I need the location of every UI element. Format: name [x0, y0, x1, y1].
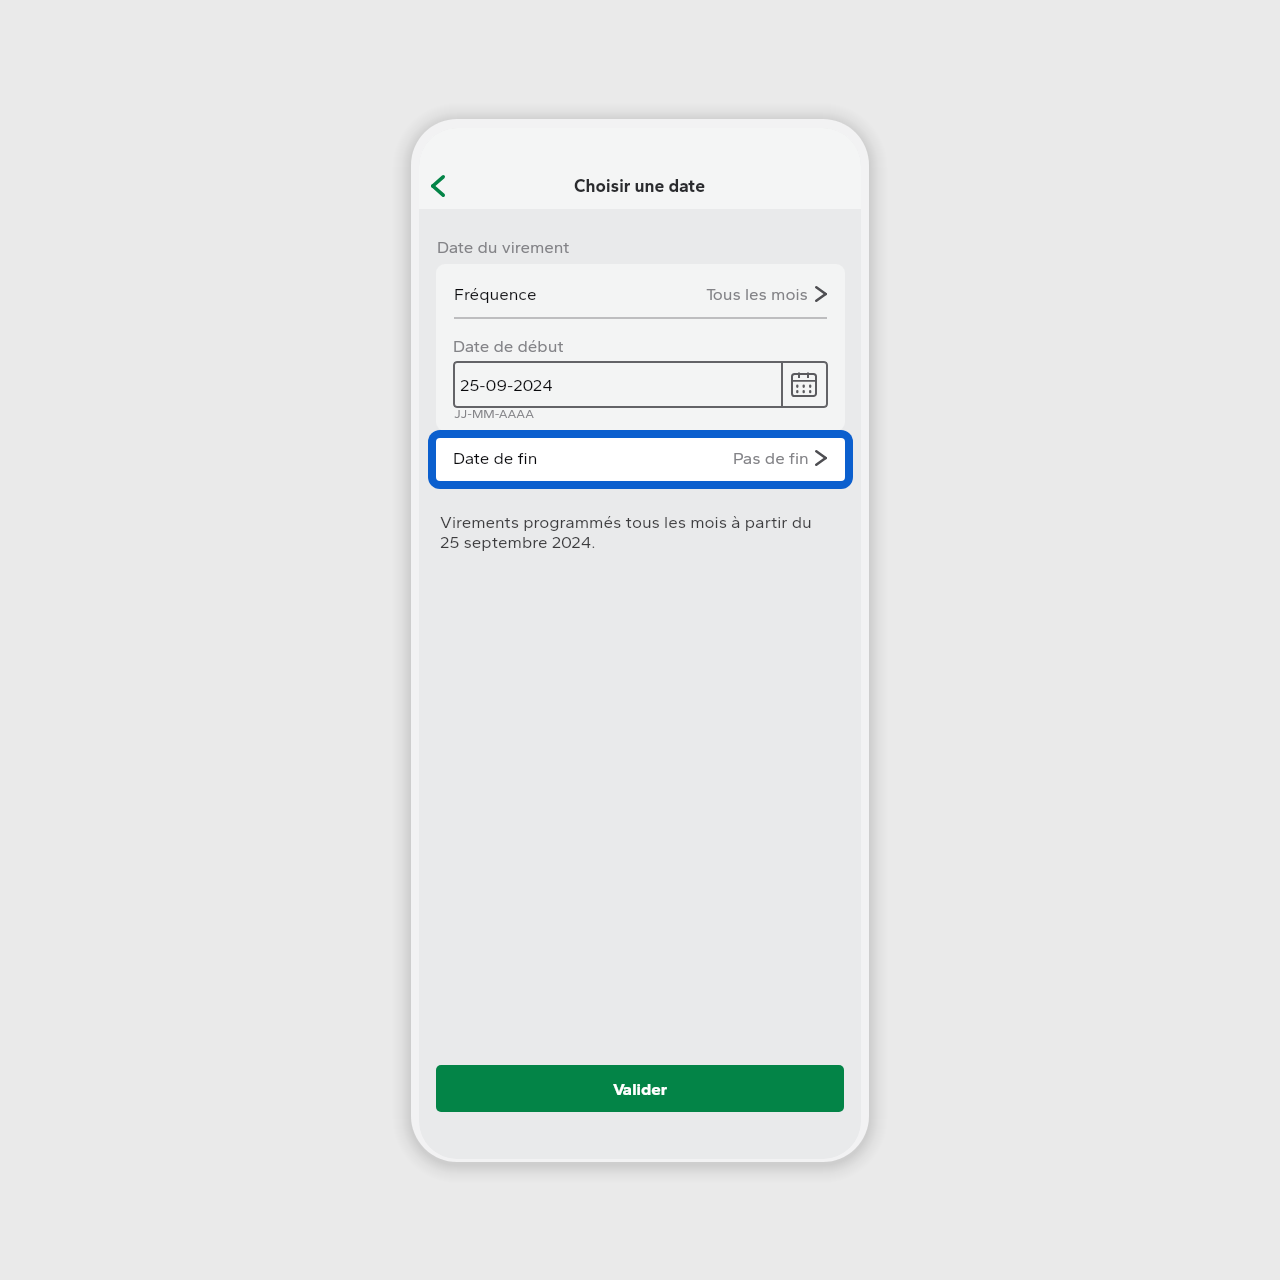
button[interactable]: Retour — [419, 162, 462, 210]
staticText: Pas de fin — [733, 446, 809, 469]
staticText: Tous les mois — [706, 282, 808, 305]
staticText: Choisir une date — [574, 173, 706, 197]
staticText: Date de fin — [453, 446, 538, 469]
button[interactable]: Date de fin — [436, 438, 845, 481]
staticText: JJ-MM-AAAA — [454, 405, 534, 422]
button[interactable]: Ouvrir le calendrier — [783, 361, 828, 408]
staticText: Virements programmés tous les mois à par… — [440, 512, 820, 552]
staticText: Date de début — [453, 334, 564, 357]
staticText: Valider — [613, 1077, 668, 1100]
staticText: Fréquence — [454, 282, 537, 305]
button[interactable]: Valider — [436, 1065, 844, 1112]
staticText: Date du virement — [437, 235, 570, 258]
staticText: 25-09-2024 — [460, 373, 781, 396]
button[interactable]: Fréquence — [436, 264, 845, 317]
